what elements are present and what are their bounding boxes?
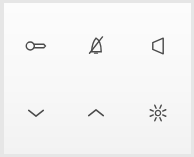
- button[interactable]: Do not disturb: [4, 23, 67, 69]
- button[interactable]: Mute notifications: [67, 23, 125, 69]
- button[interactable]: Volume: [125, 23, 191, 69]
- button[interactable]: Brightness: [125, 91, 191, 135]
- button[interactable]: Lower blinds: [4, 91, 67, 135]
- button[interactable]: Raise blinds: [67, 91, 125, 135]
